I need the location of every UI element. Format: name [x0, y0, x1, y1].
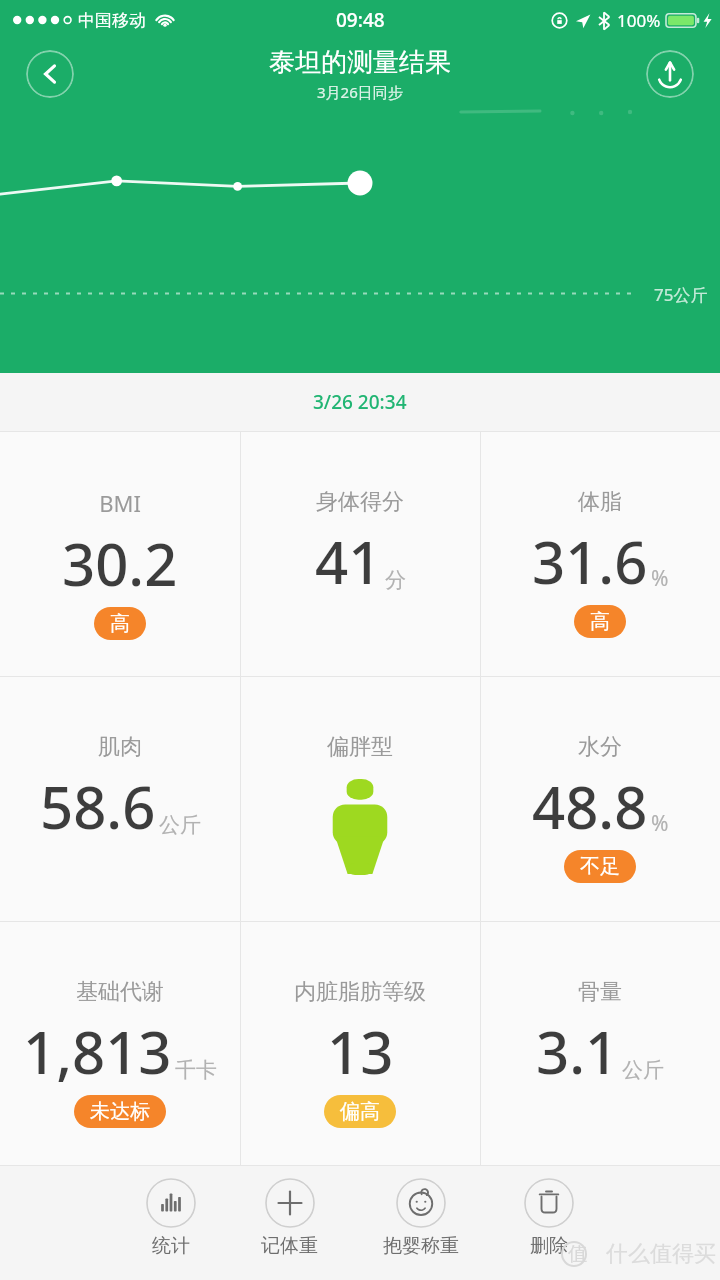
staticText: 体脂	[578, 488, 622, 516]
staticText: 3/26 20:34	[313, 389, 407, 415]
button[interactable]: 肌肉	[0, 676, 240, 921]
staticText: 48.8	[532, 767, 648, 846]
staticText: %	[651, 564, 669, 593]
staticText: 什么值得买	[606, 1240, 716, 1268]
staticText: 水分	[578, 733, 622, 761]
staticText: 3月26日同步	[317, 82, 403, 102]
button[interactable]: 内脏脂肪等级	[240, 921, 480, 1166]
button[interactable]: 基础代谢	[0, 921, 240, 1166]
staticText: 公斤	[622, 1057, 664, 1083]
staticText: 内脏脂肪等级	[294, 978, 426, 1006]
staticText: 100%	[617, 9, 661, 32]
staticText: 值	[568, 1242, 587, 1266]
staticText: 中国移动	[78, 10, 146, 31]
staticText: 31.6	[532, 522, 648, 601]
button[interactable]: 统计	[142, 1178, 200, 1258]
staticText: 3.1	[536, 1012, 619, 1091]
staticText: 30.2	[62, 524, 178, 603]
staticText: 09:48	[336, 7, 385, 33]
staticText: 偏胖型	[327, 733, 393, 761]
staticText: 抱婴称重	[383, 1234, 459, 1258]
staticText: 1,813	[23, 1012, 172, 1091]
staticText: 公斤	[159, 812, 201, 838]
staticText: 骨量	[578, 978, 622, 1006]
staticText: 统计	[152, 1234, 190, 1258]
button[interactable]: 身体得分	[240, 431, 480, 676]
staticText: BMI	[99, 488, 141, 518]
staticText: 基础代谢	[76, 978, 164, 1006]
staticText: 13	[327, 1012, 394, 1091]
staticText: 75公斤	[654, 283, 708, 306]
button[interactable]: Back	[26, 50, 74, 98]
button[interactable]: 记体重	[257, 1178, 322, 1258]
staticText: 58.6	[40, 767, 156, 846]
staticText: 分	[385, 567, 406, 593]
button[interactable]: 体脂	[480, 431, 720, 676]
staticText: 高	[590, 609, 610, 634]
button[interactable]: Share	[646, 50, 694, 98]
button[interactable]: 偏胖型	[240, 676, 480, 921]
staticText: 41	[315, 522, 382, 601]
staticText: 删除	[530, 1234, 568, 1258]
staticText: 未达标	[90, 1099, 150, 1124]
staticText: 偏高	[340, 1099, 380, 1124]
button[interactable]: 删除	[520, 1178, 578, 1258]
button[interactable]: 水分	[480, 676, 720, 921]
button[interactable]: 抱婴称重	[379, 1178, 463, 1258]
staticText: 高	[110, 611, 130, 636]
staticText: 记体重	[261, 1234, 318, 1258]
button[interactable]: BMI	[0, 431, 240, 676]
staticText: 千卡	[175, 1057, 217, 1083]
staticText: 身体得分	[316, 488, 404, 516]
staticText: 不足	[580, 854, 620, 879]
staticText: %	[651, 809, 669, 838]
button[interactable]: 骨量	[480, 921, 720, 1166]
staticText: 肌肉	[98, 733, 142, 761]
staticText: 泰坦的测量结果	[269, 46, 451, 79]
